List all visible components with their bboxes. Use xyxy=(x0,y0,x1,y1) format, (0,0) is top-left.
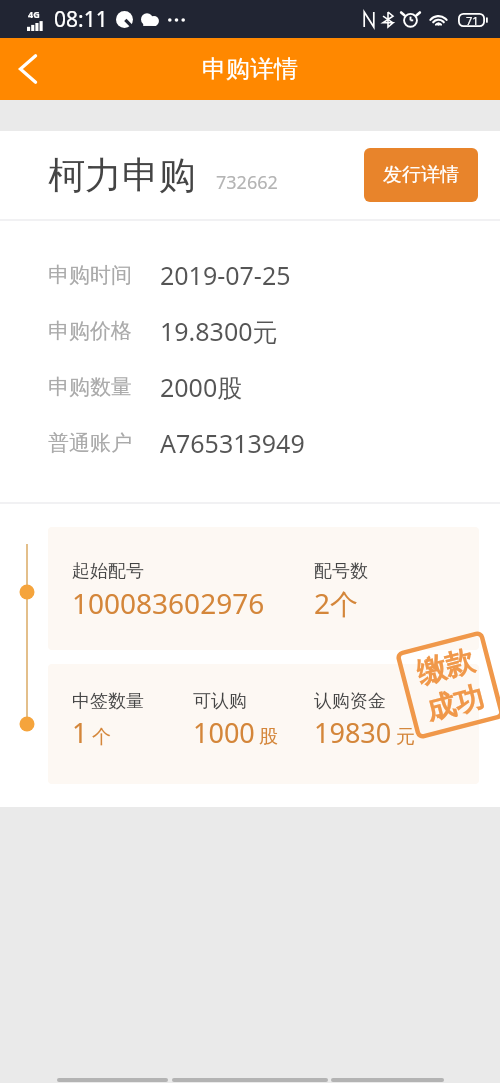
staticText: 2019-07-25 xyxy=(160,258,291,292)
staticText: 08:11 xyxy=(54,5,108,34)
staticText: 中签数量 xyxy=(72,690,144,713)
button[interactable]: Home xyxy=(172,1078,328,1082)
button[interactable]: Back xyxy=(57,1078,168,1082)
button[interactable]: 起始配号 xyxy=(48,527,479,650)
button[interactable]: Back xyxy=(0,41,56,97)
staticText: 发行详情 xyxy=(383,163,459,187)
staticText: 柯力申购 xyxy=(48,152,196,199)
staticText: 可认购 xyxy=(193,690,247,713)
staticText: 元 xyxy=(396,725,415,749)
staticText: 1 xyxy=(72,714,88,751)
staticText: 申购详情 xyxy=(202,54,298,84)
staticText: 申购数量 xyxy=(48,374,160,400)
staticText: 成功 xyxy=(422,679,488,729)
staticText: 申购时间 xyxy=(48,262,160,288)
staticText: 4G xyxy=(28,8,40,20)
staticText: 缴款 xyxy=(413,642,478,692)
staticText: 申购价格 xyxy=(48,318,160,344)
staticText: 普通账户 xyxy=(48,430,160,456)
staticText: 起始配号 xyxy=(72,560,144,583)
staticText: 19.8300元 xyxy=(160,314,278,348)
staticText: 19830 xyxy=(314,714,392,751)
button[interactable]: 中签数量 xyxy=(48,664,479,784)
staticText: 71 xyxy=(466,13,479,27)
staticText: 配号数 xyxy=(314,560,368,583)
staticText: A765313949 xyxy=(160,426,305,460)
staticText: 2000股 xyxy=(160,370,243,404)
button[interactable]: Recent apps xyxy=(331,1078,444,1082)
staticText: 认购资金 xyxy=(314,690,386,713)
staticText: 100083602976 xyxy=(72,584,265,622)
staticText: 732662 xyxy=(216,170,278,195)
staticText: 1000 xyxy=(193,714,255,751)
button[interactable]: 发行详情 xyxy=(364,148,478,202)
staticText: 股 xyxy=(259,725,278,749)
staticText: 2个 xyxy=(314,584,359,622)
staticText: 个 xyxy=(92,725,111,749)
